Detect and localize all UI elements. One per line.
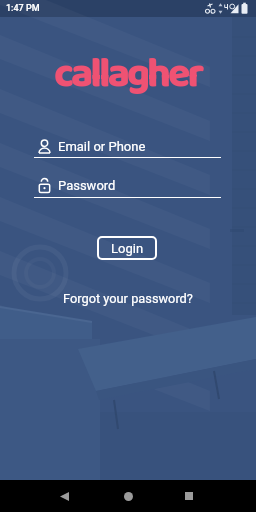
staticText: Login bbox=[111, 241, 144, 256]
button[interactable] bbox=[50, 480, 78, 512]
button[interactable]: Login bbox=[97, 236, 157, 260]
button[interactable] bbox=[175, 480, 203, 512]
staticText: Password bbox=[58, 178, 116, 193]
button[interactable]: Password bbox=[34, 173, 222, 197]
staticText: callagher bbox=[54, 42, 202, 108]
staticText: Email or Phone bbox=[58, 139, 146, 154]
staticText: Forgot your password? bbox=[63, 291, 193, 306]
button[interactable] bbox=[114, 480, 142, 512]
button[interactable]: Email or Phone bbox=[34, 134, 222, 158]
staticText: 1:47 PM bbox=[6, 3, 40, 14]
button[interactable]: Forgot your password? bbox=[0, 290, 256, 307]
